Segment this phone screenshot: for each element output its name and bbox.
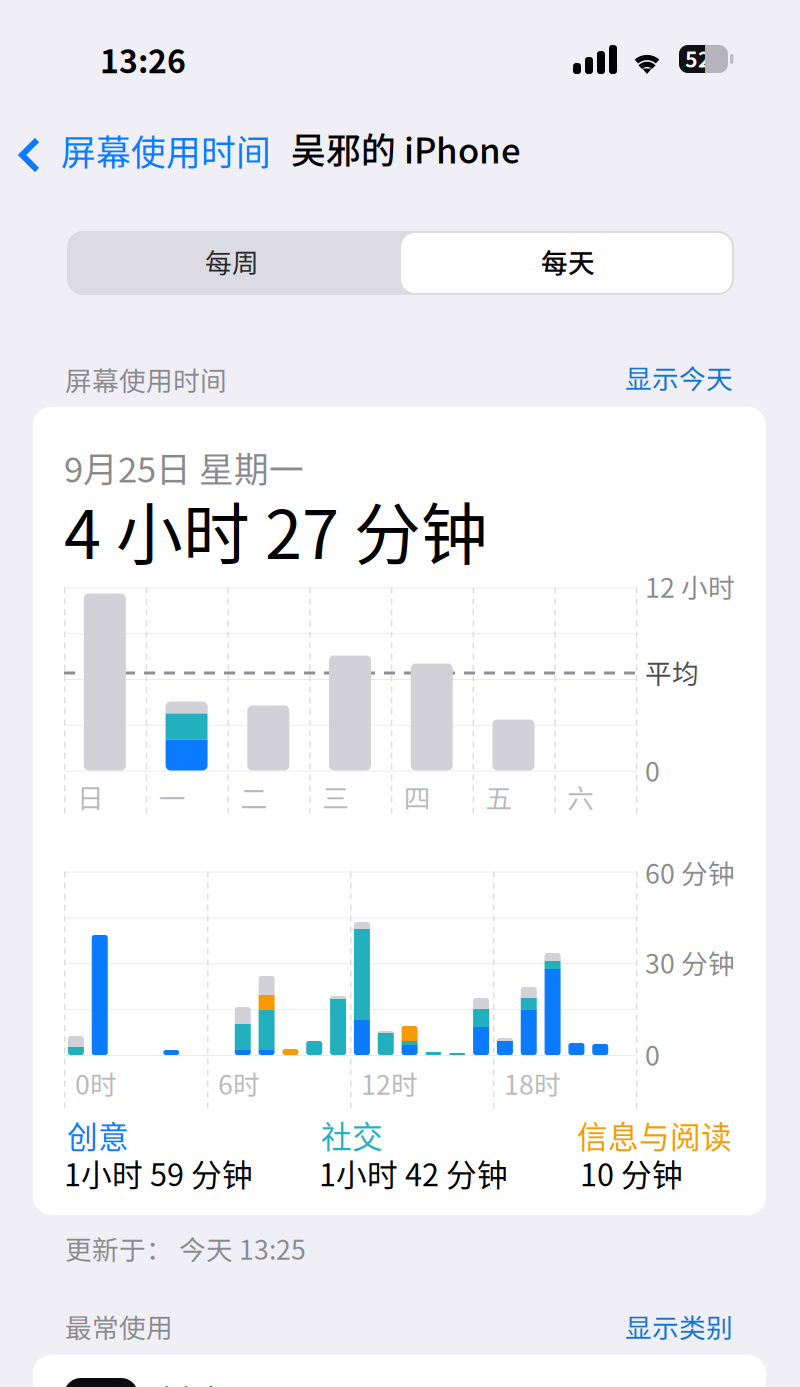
staticText: 抖音 xyxy=(159,1376,229,1387)
staticText: 0 xyxy=(645,1035,660,1073)
staticText: 9月25日 星期一 xyxy=(64,442,304,492)
button[interactable]: 每周 xyxy=(67,231,401,295)
staticText: 二 xyxy=(240,777,267,816)
staticText: 创意 xyxy=(67,1113,129,1157)
staticText: 6时 xyxy=(218,1064,260,1102)
button[interactable]: 显示类别 xyxy=(626,1316,736,1346)
staticText: 13:26 xyxy=(100,36,186,82)
staticText: 三 xyxy=(322,777,349,816)
button[interactable]: 每天 xyxy=(401,233,732,293)
staticText: 12时 xyxy=(361,1064,418,1102)
staticText: 0 xyxy=(645,751,660,789)
staticText: 屏幕使用时间 xyxy=(65,360,227,398)
button[interactable]: 屏幕使用时间 xyxy=(0,125,290,185)
staticText: 30 分钟 xyxy=(645,943,735,981)
staticText: 吴邪的 iPhone xyxy=(291,123,521,173)
staticText: 社交 xyxy=(321,1113,383,1157)
staticText: 每周 xyxy=(205,242,259,280)
staticText: 更新于： 今天 13:25 xyxy=(65,1229,306,1267)
staticText: 显示今天 xyxy=(625,358,733,396)
staticText: 0时 xyxy=(75,1064,117,1102)
staticText: 六 xyxy=(567,777,594,816)
staticText: 屏幕使用时间 xyxy=(61,125,271,175)
staticText: 五 xyxy=(486,777,513,816)
staticText: 一 xyxy=(159,777,186,816)
staticText: 10 分钟 xyxy=(580,1151,683,1195)
staticText: 18时 xyxy=(504,1064,561,1102)
staticText: 每天 xyxy=(541,242,595,280)
staticText: 最常使用 xyxy=(65,1307,173,1345)
staticText: 1小时 59 分钟 xyxy=(64,1151,253,1195)
staticText: 52 xyxy=(685,43,711,74)
staticText: 日 xyxy=(77,777,104,816)
staticText: 60 分钟 xyxy=(645,853,735,891)
staticText: 1小时 42 分钟 xyxy=(319,1151,508,1195)
staticText: 显示类别 xyxy=(625,1307,733,1345)
staticText: 4 小时 27 分钟 xyxy=(64,482,488,578)
staticText: 12 小时 xyxy=(645,567,735,605)
button[interactable]: 显示今天 xyxy=(626,367,736,397)
staticText: 信息与阅读 xyxy=(577,1113,732,1157)
staticText: 52 xyxy=(685,43,698,104)
staticText: 四 xyxy=(404,777,431,816)
staticText: 平均 xyxy=(645,653,699,691)
